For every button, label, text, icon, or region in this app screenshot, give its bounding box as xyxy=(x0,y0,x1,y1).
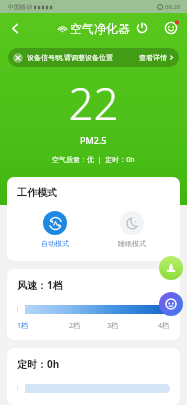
staticText: 08:26 xyxy=(165,3,181,11)
staticText: 自动模式 xyxy=(41,239,69,248)
button[interactable]: Timer slider xyxy=(17,381,170,395)
staticText: 空气净化器 xyxy=(70,21,130,36)
staticText: 3档 xyxy=(107,321,119,331)
staticText: 1档 xyxy=(17,321,29,331)
button[interactable]: Power xyxy=(131,17,153,39)
staticText: 4档 xyxy=(158,321,170,331)
button[interactable]: 睡眠模式 xyxy=(116,209,148,250)
button[interactable]: 自动模式 xyxy=(39,209,71,250)
staticText: 风速：1档 xyxy=(17,278,63,292)
staticText: 定时：0h xyxy=(17,357,60,371)
button[interactable]: Filter status xyxy=(159,256,183,280)
button[interactable]: 设备信号弱,请调整设备位置 xyxy=(8,48,179,67)
staticText: 工作模式 xyxy=(17,186,57,199)
staticText: 睡眠模式 xyxy=(118,239,146,248)
staticText: 中国移动 xyxy=(8,3,32,11)
staticText: 设备信号弱,请调整设备位置 xyxy=(27,53,139,63)
button[interactable]: Voice assistant xyxy=(159,292,183,316)
staticText: 查看详情 xyxy=(139,53,167,62)
staticText: PM2.5 xyxy=(80,134,107,146)
button[interactable]: Back xyxy=(4,17,26,39)
staticText: 空气质量：优 | 定时：0h xyxy=(52,155,135,165)
button[interactable]: Fan speed slider xyxy=(17,302,170,316)
staticText: 2档 xyxy=(69,321,81,331)
staticText: 22 xyxy=(68,73,119,133)
button[interactable]: More xyxy=(160,17,182,39)
